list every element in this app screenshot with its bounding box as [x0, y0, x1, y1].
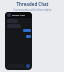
staticText: Design Crew	[12, 14, 25, 17]
staticText: Conversation with inline replies	[13, 8, 52, 12]
button[interactable]: Design Crew	[7, 12, 30, 18]
button[interactable]: Send	[26, 64, 30, 68]
staticText: Threaded Chat	[16, 1, 49, 7]
